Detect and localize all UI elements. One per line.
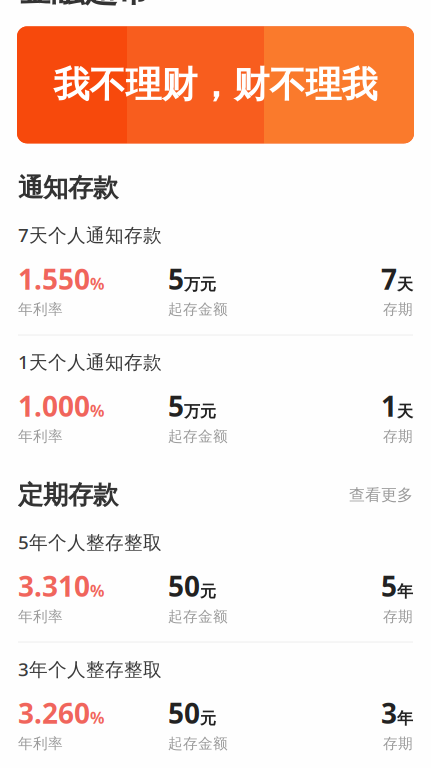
button[interactable]: 7天个人通知存款	[0, 222, 431, 334]
staticText: 查看更多	[349, 485, 413, 505]
staticText: 存期	[383, 427, 413, 445]
staticText: %	[90, 273, 104, 294]
button[interactable]: 5年个人整存整取	[0, 530, 431, 642]
staticText: 3	[381, 694, 397, 732]
button[interactable]: 我不理财，财不理我	[0, 26, 431, 143]
staticText: 5	[168, 260, 184, 297]
staticText: 7	[381, 260, 397, 297]
button[interactable]: 1天个人通知存款	[0, 334, 431, 461]
staticText: 年利率	[18, 427, 63, 445]
staticText: 年利率	[18, 734, 63, 752]
staticText: 1	[381, 387, 397, 424]
staticText: 5	[381, 567, 397, 605]
staticText: 起存金额	[168, 427, 228, 445]
button[interactable]: 3年个人整存整取	[0, 642, 431, 768]
staticText: 年利率	[18, 300, 63, 318]
staticText: 元	[200, 582, 216, 601]
staticText: 50	[168, 694, 200, 732]
staticText: 年利率	[18, 608, 63, 626]
staticText: 5年个人整存整取	[18, 530, 162, 554]
staticText: 1天个人通知存款	[18, 349, 162, 374]
staticText: 天	[397, 275, 413, 294]
staticText: 起存金额	[168, 300, 228, 318]
staticText: 50	[168, 567, 200, 605]
staticText: 金融超市	[18, 0, 150, 10]
staticText: 3年个人整存整取	[18, 657, 162, 681]
staticText: 起存金额	[168, 734, 228, 752]
staticText: 我不理财，财不理我	[53, 63, 377, 107]
staticText: 元	[200, 709, 216, 728]
staticText: 万元	[184, 402, 216, 421]
button[interactable]: 查看更多	[339, 481, 413, 509]
staticText: 年	[397, 709, 413, 728]
staticText: 存期	[383, 734, 413, 752]
staticText: 存期	[383, 608, 413, 626]
staticText: 通知存款	[18, 172, 118, 203]
staticText: 3.310	[18, 567, 90, 605]
staticText: 万元	[184, 275, 216, 294]
staticText: 1.000	[18, 387, 90, 424]
staticText: %	[90, 580, 104, 601]
staticText: 7天个人通知存款	[18, 222, 162, 247]
staticText: %	[90, 400, 104, 421]
staticText: 起存金额	[168, 608, 228, 626]
staticText: 3.260	[18, 694, 90, 732]
staticText: 年	[397, 582, 413, 601]
staticText: 天	[397, 402, 413, 421]
staticText: 1.550	[18, 260, 90, 297]
staticText: 存期	[383, 300, 413, 318]
staticText: 5	[168, 387, 184, 424]
staticText: %	[90, 707, 104, 728]
staticText: 定期存款	[18, 479, 118, 511]
